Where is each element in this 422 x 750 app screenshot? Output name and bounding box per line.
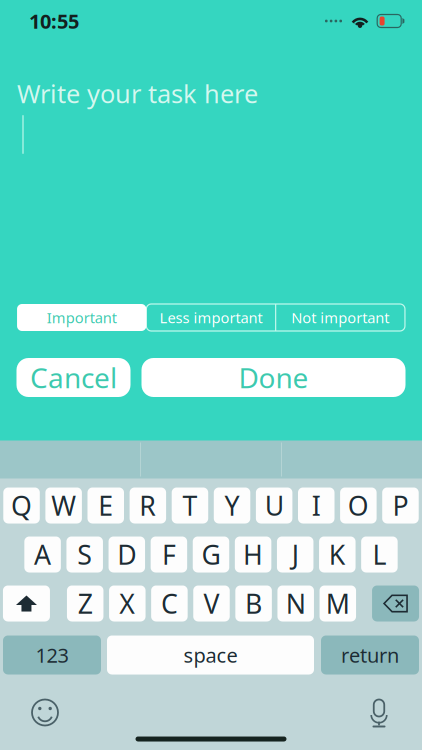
- staticText: Done: [238, 359, 308, 396]
- button[interactable]: Not important: [276, 304, 405, 331]
- button[interactable]: Emoji keyboard: [28, 696, 62, 728]
- staticText: space: [183, 642, 237, 668]
- button[interactable]: return: [321, 635, 419, 674]
- staticText: B: [245, 586, 262, 621]
- button[interactable]: D: [108, 536, 145, 572]
- staticText: X: [119, 586, 135, 621]
- button[interactable]: V: [193, 585, 230, 621]
- staticText: O: [348, 488, 369, 523]
- staticText: A: [34, 537, 51, 572]
- button[interactable]: C: [151, 585, 188, 621]
- button[interactable]: O: [340, 487, 377, 523]
- staticText: P: [392, 488, 408, 523]
- button[interactable]: F: [151, 536, 187, 572]
- button[interactable]: P: [382, 487, 419, 523]
- button[interactable]: Delete: [372, 585, 419, 621]
- staticText: I: [312, 488, 321, 523]
- button[interactable]: N: [277, 585, 314, 621]
- staticText: W: [51, 488, 76, 523]
- button[interactable]: U: [256, 487, 292, 523]
- staticText: Q: [11, 488, 32, 523]
- staticText: Important: [47, 308, 117, 327]
- staticText: T: [182, 488, 197, 523]
- button[interactable]: A: [24, 536, 61, 572]
- button[interactable]: Less important: [146, 304, 276, 331]
- button[interactable]: Done: [141, 358, 405, 397]
- button[interactable]: R: [130, 487, 166, 523]
- staticText: R: [139, 488, 156, 523]
- button[interactable]: H: [235, 536, 271, 572]
- staticText: Less important: [159, 308, 262, 327]
- button[interactable]: E: [87, 487, 124, 523]
- staticText: S: [77, 537, 92, 572]
- button[interactable]: M: [319, 585, 356, 621]
- button[interactable]: T: [172, 487, 208, 523]
- staticText: 123: [35, 642, 68, 668]
- button[interactable]: Z: [67, 585, 103, 621]
- button[interactable]: 123: [3, 635, 101, 674]
- staticText: J: [292, 537, 299, 572]
- staticText: V: [203, 586, 219, 621]
- button[interactable]: Important: [17, 304, 146, 331]
- button[interactable]: space: [107, 635, 314, 674]
- staticText: M: [326, 586, 350, 621]
- staticText: Cancel: [30, 359, 117, 396]
- button[interactable]: Cancel: [16, 358, 130, 397]
- button[interactable]: Dictation: [364, 696, 394, 728]
- button[interactable]: G: [193, 536, 229, 572]
- staticText: C: [161, 586, 178, 621]
- button[interactable]: S: [66, 536, 103, 572]
- button[interactable]: L: [361, 536, 398, 572]
- staticText: L: [372, 537, 386, 572]
- button[interactable]: B: [235, 585, 272, 621]
- staticText: Write your task here: [17, 77, 258, 110]
- staticText: E: [98, 488, 113, 523]
- staticText: Z: [78, 586, 93, 621]
- button[interactable]: Q: [3, 487, 40, 523]
- button[interactable]: W: [45, 487, 82, 523]
- staticText: return: [341, 642, 399, 668]
- button[interactable]: X: [109, 585, 145, 621]
- staticText: F: [162, 537, 176, 572]
- staticText: D: [117, 537, 136, 572]
- staticText: N: [286, 586, 306, 621]
- staticText: U: [265, 488, 284, 523]
- button[interactable]: J: [277, 536, 313, 572]
- staticText: Y: [225, 488, 240, 523]
- staticText: G: [201, 537, 220, 572]
- staticText: 10:55: [29, 8, 79, 34]
- button[interactable]: K: [319, 536, 355, 572]
- button[interactable]: I: [298, 487, 334, 523]
- button[interactable]: Shift: [3, 585, 50, 621]
- staticText: K: [329, 537, 346, 572]
- button[interactable]: Y: [214, 487, 250, 523]
- staticText: Not important: [291, 308, 389, 327]
- staticText: H: [243, 537, 263, 572]
